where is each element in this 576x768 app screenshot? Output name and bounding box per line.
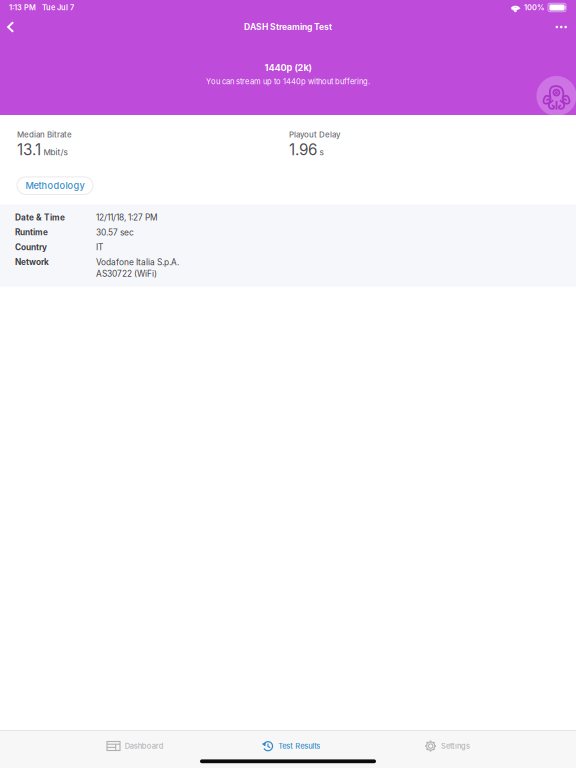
staticText: 1.96: [289, 140, 317, 159]
staticText: 12/11/18, 1:27 PM: [96, 212, 158, 222]
staticText: Runtime: [15, 227, 48, 237]
button[interactable]: More options: [541, 15, 576, 39]
staticText: 100%: [524, 3, 544, 12]
staticText: Date & Time: [15, 212, 65, 222]
staticText: 1440p (2k): [264, 62, 311, 73]
staticText: IT: [96, 242, 103, 252]
staticText: Median Bitrate: [17, 130, 72, 139]
staticText: DASH Streaming Test: [244, 22, 332, 32]
button[interactable]: Settings: [369, 735, 525, 757]
staticText: Playout Delay: [289, 130, 341, 139]
staticText: Network: [15, 257, 49, 267]
staticText: Test Results: [278, 741, 320, 750]
staticText: You can stream up to 1440p without buffe…: [206, 77, 370, 86]
staticText: Vodafone Italia S.p.A.: [96, 257, 179, 267]
staticText: Methodology: [25, 180, 84, 191]
staticText: s: [319, 147, 323, 157]
staticText: 1:13 PM: [9, 3, 36, 12]
staticText: Mbit/s: [43, 147, 67, 157]
staticText: Country: [15, 242, 47, 252]
staticText: 13.1: [17, 140, 41, 159]
button[interactable]: Back: [0, 15, 33, 39]
staticText: 30.57 sec: [96, 227, 134, 237]
staticText: Tue Jul 7: [42, 3, 74, 12]
staticText: AS30722 (WiFi): [96, 269, 157, 279]
staticText: Dashboard: [125, 741, 164, 750]
button[interactable]: Methodology: [17, 177, 93, 194]
button[interactable]: Test Results: [213, 735, 369, 757]
staticText: Settings: [441, 741, 470, 750]
button[interactable]: Dashboard: [57, 735, 213, 757]
